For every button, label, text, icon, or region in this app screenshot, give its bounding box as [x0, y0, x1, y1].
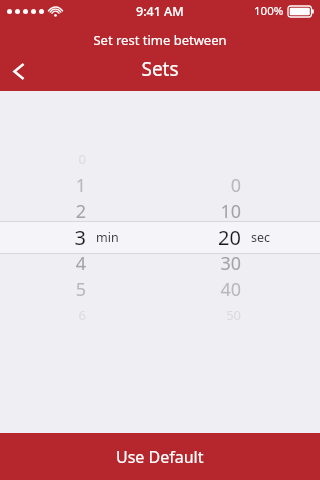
- button[interactable]: Back: [1, 53, 37, 89]
- staticText: 30: [0, 251, 241, 276]
- staticText: Sets: [0, 56, 320, 82]
- staticText: 20: [0, 224, 241, 251]
- button[interactable]: [0, 221, 320, 254]
- staticText: 2: [0, 199, 86, 224]
- staticText: 10: [0, 199, 241, 224]
- staticText: 3: [0, 224, 86, 251]
- staticText: 4: [0, 251, 86, 276]
- staticText: sec: [251, 229, 271, 246]
- staticText: 100%: [254, 3, 284, 19]
- staticText: 0: [0, 173, 241, 198]
- staticText: 40: [0, 277, 241, 302]
- staticText: 1: [0, 173, 86, 198]
- staticText: min: [96, 229, 119, 246]
- staticText: Use Default: [116, 446, 204, 468]
- staticText: 9:41 AM: [136, 3, 184, 20]
- button[interactable]: Use Default: [0, 433, 320, 480]
- staticText: Set rest time between: [0, 31, 320, 49]
- staticText: 5: [0, 277, 86, 302]
